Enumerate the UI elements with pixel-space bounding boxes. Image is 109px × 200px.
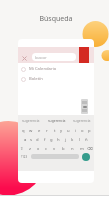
button[interactable]: q [19, 126, 27, 135]
staticText: sugerencia [73, 118, 91, 123]
staticText: v [53, 146, 56, 152]
button[interactable]: j [62, 135, 69, 144]
button[interactable]: o [79, 126, 86, 135]
button[interactable]: k [69, 135, 76, 144]
button[interactable]: e [35, 126, 43, 135]
button[interactable]: h [55, 135, 62, 144]
staticText: s [30, 137, 33, 143]
staticText: ?123 [21, 155, 28, 159]
button[interactable]: Back [22, 56, 27, 61]
button[interactable]: s [28, 135, 34, 144]
staticText: Mi Calendario [29, 66, 57, 72]
staticText: a [24, 137, 27, 143]
button[interactable]: l [76, 135, 83, 144]
staticText: l [79, 137, 81, 143]
staticText: sugerencia [48, 118, 66, 123]
staticText: h [57, 137, 60, 143]
staticText: k [71, 137, 74, 143]
button[interactable]: n [68, 144, 77, 153]
staticText: g [50, 137, 53, 143]
staticText: p [88, 128, 91, 134]
staticText: x [37, 146, 40, 152]
staticText: ⌫ [87, 146, 93, 151]
button[interactable]: Keyboard settings [81, 99, 88, 114]
button[interactable]: ñ [83, 135, 90, 144]
button[interactable]: m [77, 144, 86, 153]
button[interactable]: r [43, 126, 51, 135]
button[interactable]: i [72, 126, 79, 135]
button[interactable]: Shift [18, 144, 26, 153]
staticText: w [29, 128, 33, 134]
staticText: ñ [85, 137, 88, 143]
button[interactable]: Boletín [18, 74, 94, 84]
button[interactable]: g [48, 135, 55, 144]
staticText: t [54, 128, 56, 134]
button[interactable]: a [22, 135, 28, 144]
button[interactable]: b [59, 144, 68, 153]
button[interactable]: v [50, 144, 59, 153]
button[interactable]: t [51, 126, 58, 135]
staticText: m [80, 146, 84, 152]
button[interactable]: Mi Calendario [18, 64, 94, 74]
button[interactable]: sugerencia [44, 115, 69, 126]
staticText: i [75, 128, 77, 134]
staticText: n [71, 146, 74, 152]
staticText: q [22, 128, 25, 134]
staticText: ⇧ [20, 146, 24, 151]
button[interactable]: Backspace [86, 144, 94, 153]
staticText: o [81, 128, 84, 134]
button[interactable]: y [58, 126, 65, 135]
staticText: y [60, 128, 63, 134]
button[interactable] [18, 47, 94, 63]
button[interactable]: ?123 [20, 153, 28, 160]
button[interactable]: p [86, 126, 93, 135]
staticText: f [44, 137, 46, 143]
button[interactable]: sugerencia [69, 115, 94, 126]
button[interactable]: z [26, 144, 34, 153]
button[interactable]: d [34, 135, 41, 144]
button[interactable]: f [41, 135, 48, 144]
button[interactable]: u [65, 126, 72, 135]
staticText: c [45, 146, 48, 152]
staticText: z [29, 146, 31, 152]
staticText: d [36, 137, 39, 143]
button[interactable]: x [34, 144, 42, 153]
staticText: e [38, 128, 41, 134]
staticText: sugerencia [22, 118, 40, 123]
staticText: u [67, 128, 70, 134]
staticText: buscar [35, 55, 47, 60]
staticText: r [46, 128, 48, 134]
button[interactable]: sugerencia [18, 115, 44, 126]
staticText: b [62, 146, 65, 152]
staticText: Búsqueda [16, 14, 96, 24]
button[interactable]: Search [82, 153, 90, 161]
button[interactable]: buscar [32, 53, 76, 61]
staticText: j [65, 137, 67, 143]
button[interactable]: w [27, 126, 35, 135]
button[interactable]: c [42, 144, 50, 153]
staticText: Boletín [29, 76, 43, 82]
